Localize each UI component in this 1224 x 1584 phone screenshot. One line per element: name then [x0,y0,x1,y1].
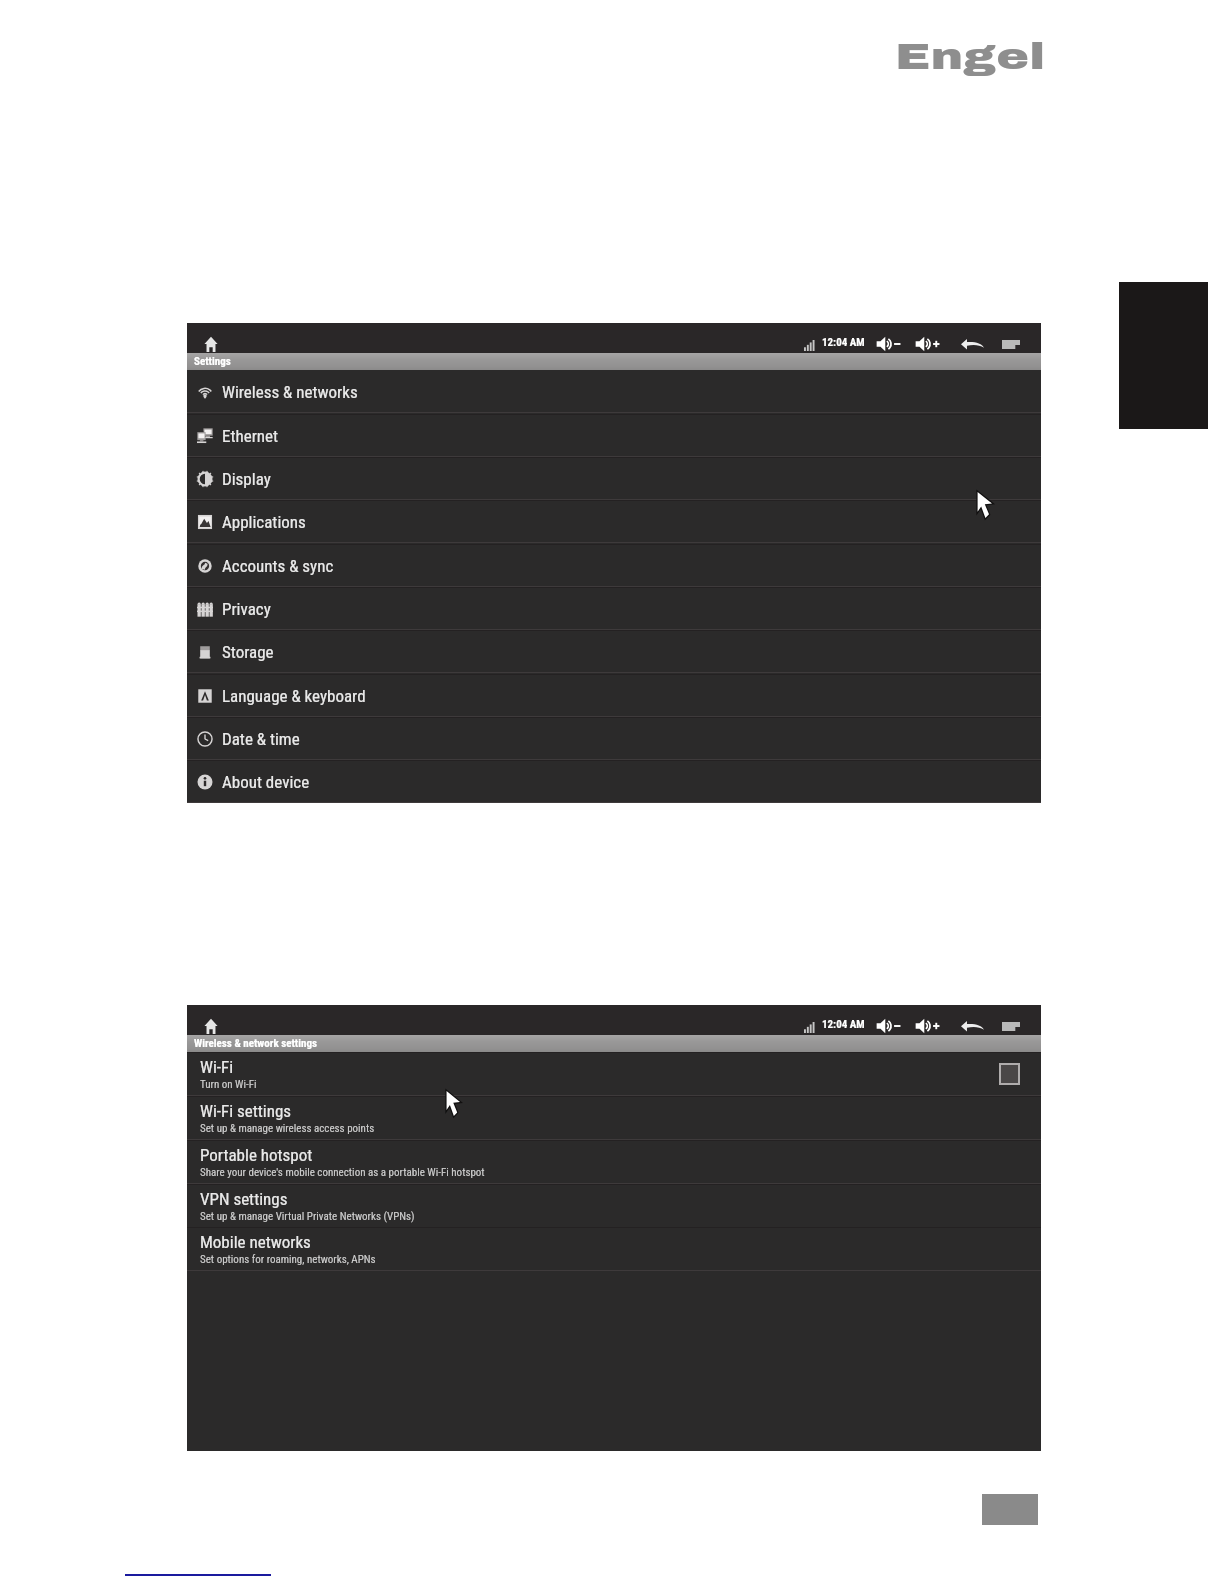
staticText: Date & time [222,729,300,749]
staticText: 12:04 AM [822,336,865,349]
button[interactable]: Language & keyboard [187,674,1041,717]
staticText: Set options for roaming, networks, APNs [200,1253,376,1266]
staticText: Ethernet [222,426,279,446]
staticText: Accounts & sync [222,556,334,576]
button[interactable]: Wi-Fi settings [187,1096,1041,1140]
staticText: Display [222,469,271,489]
button[interactable]: Back [961,339,984,350]
button[interactable]: Volume up [915,336,941,352]
button[interactable]: VPN settings [187,1184,1041,1228]
staticText: Privacy [222,599,271,619]
button[interactable]: Date & time [187,717,1041,760]
button[interactable]: Home [204,335,218,353]
staticText: Storage [222,642,274,662]
button[interactable]: Wi-Fi [187,1052,1041,1096]
staticText: 12:04 AM [822,1018,865,1031]
button[interactable]: Portable hotspot [187,1140,1041,1184]
button[interactable]: Wireless & networks [187,370,1041,413]
staticText: About device [222,772,310,792]
staticText: Language & keyboard [222,686,366,706]
staticText: VPN settings [200,1189,288,1209]
button[interactable]: Display [187,457,1041,500]
staticText: Mobile networks [200,1232,311,1252]
staticText: Wireless & networks [222,382,358,402]
button[interactable]: Recent apps [1002,340,1020,349]
staticText: Set up & manage wireless access points [200,1122,375,1135]
button[interactable]: Ethernet [187,414,1041,457]
staticText: Share your device's mobile connection as… [200,1166,485,1179]
staticText: Wi-Fi [200,1057,234,1077]
button[interactable]: Recent apps [1002,1022,1020,1031]
staticText: Turn on Wi-Fi [200,1078,257,1091]
button[interactable]: Back [961,1021,984,1032]
staticText: Portable hotspot [200,1145,313,1165]
button[interactable]: Applications [187,500,1041,543]
staticText: Set up & manage Virtual Private Networks… [200,1210,415,1223]
button[interactable]: Accounts & sync [187,544,1041,587]
button[interactable]: About device [187,760,1041,803]
button[interactable]: Storage [187,630,1041,673]
staticText: Wireless & network settings [194,1037,317,1050]
button[interactable]: Mobile networks [187,1227,1041,1271]
button[interactable]: Volume down [876,1018,902,1034]
button[interactable]: Toggle Wi-Fi [999,1063,1020,1085]
staticText: Wi-Fi settings [200,1101,292,1121]
staticText: Settings [194,355,231,368]
button[interactable]: Volume up [915,1018,941,1034]
button[interactable]: Home [204,1017,218,1035]
staticText: Applications [222,512,306,532]
staticText: Engel [895,37,1047,77]
button[interactable]: Privacy [187,587,1041,630]
button[interactable]: Volume down [876,336,902,352]
